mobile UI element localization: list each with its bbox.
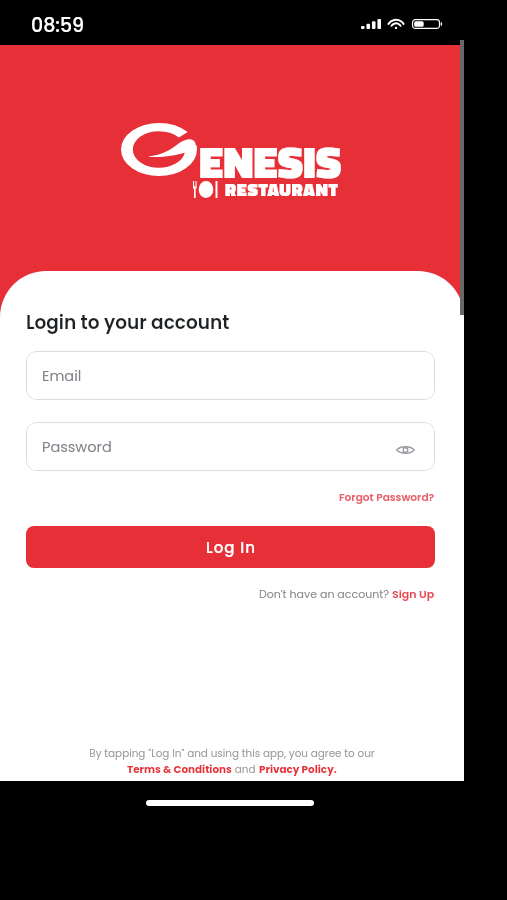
staticText: Email xyxy=(42,366,82,386)
button[interactable]: Sign Up xyxy=(392,586,435,601)
button[interactable]: Forgot Password? xyxy=(339,490,435,505)
staticText: Password xyxy=(42,437,112,457)
staticText: 08:59 xyxy=(31,12,85,39)
button[interactable]: Password xyxy=(26,422,435,471)
staticText: Login to your account xyxy=(26,310,230,336)
staticText: and xyxy=(232,762,259,777)
staticText: By tapping "Log In" and using this app, … xyxy=(89,746,375,761)
button[interactable]: Terms & Conditions xyxy=(127,762,232,777)
staticText: Don't have an account? xyxy=(259,586,392,601)
button[interactable]: Email xyxy=(26,351,435,400)
button[interactable]: Privacy Policy. xyxy=(259,762,337,777)
staticText: Log In xyxy=(206,537,256,558)
staticText: RESTAURANT xyxy=(225,176,339,203)
button[interactable]: Log In xyxy=(26,526,435,568)
button[interactable]: Show password xyxy=(396,445,415,455)
staticText: ENESIS xyxy=(199,128,342,195)
